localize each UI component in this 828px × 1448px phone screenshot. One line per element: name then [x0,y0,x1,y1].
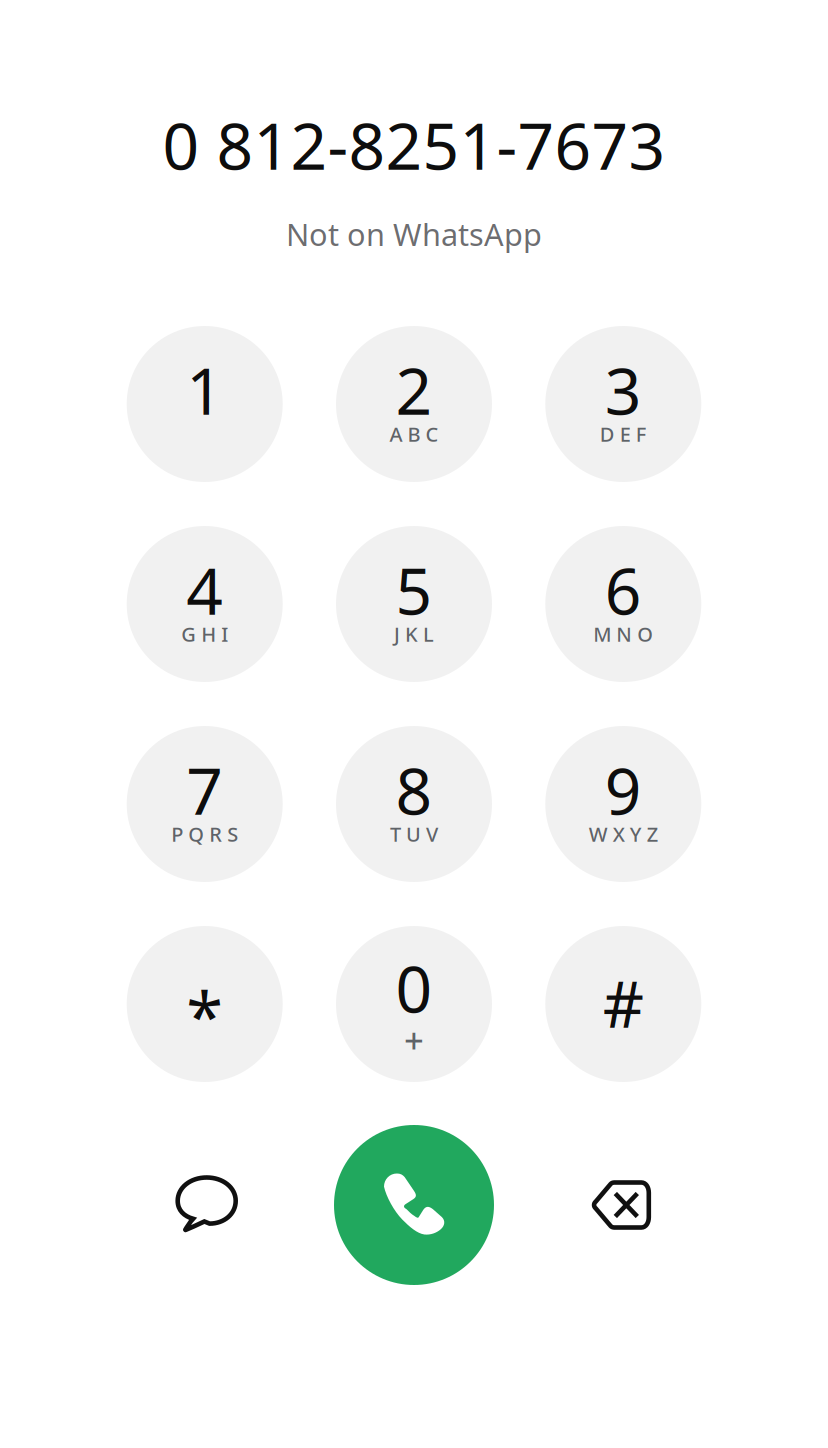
staticText: 7 [186,747,223,832]
button[interactable]: Call [336,1125,492,1285]
button[interactable]: 4 [127,526,283,682]
button[interactable]: 9 [545,726,701,882]
button[interactable]: 6 [545,526,701,682]
button[interactable]: Message [127,1125,283,1285]
staticText: P Q R S [171,821,238,847]
staticText: 5 [395,547,432,632]
staticText: 4 [186,547,223,632]
staticText: W X Y Z [589,821,658,847]
staticText: T U V [390,821,438,847]
staticText: G H I [181,621,228,647]
staticText: * [186,972,223,1060]
button[interactable]: 5 [336,526,492,682]
button[interactable]: 3 [545,326,701,482]
button[interactable]: 2 [336,326,492,482]
staticText: 9 [605,747,642,832]
button[interactable]: 7 [127,726,283,882]
staticText: Not on WhatsApp [286,214,542,254]
staticText: M N O [593,621,653,647]
staticText: D E F [600,421,647,447]
staticText: J K L [394,621,434,647]
button[interactable]: 8 [336,726,492,882]
button[interactable]: # [545,926,701,1082]
button[interactable]: Delete [545,1125,701,1285]
button[interactable]: 1 [127,326,283,482]
staticText: 0 812-8251-7673 [162,102,665,187]
staticText: 3 [605,347,642,432]
staticText: 6 [605,547,642,632]
staticText: 2 [395,347,432,432]
staticText: # [603,960,644,1045]
staticText: 0 [395,945,432,1030]
staticText: A B C [389,421,438,447]
button[interactable]: * [127,926,283,1082]
button[interactable]: 0 [336,926,492,1082]
staticText: 8 [395,747,432,832]
staticText: + [404,1017,424,1063]
staticText: 1 [186,347,223,432]
